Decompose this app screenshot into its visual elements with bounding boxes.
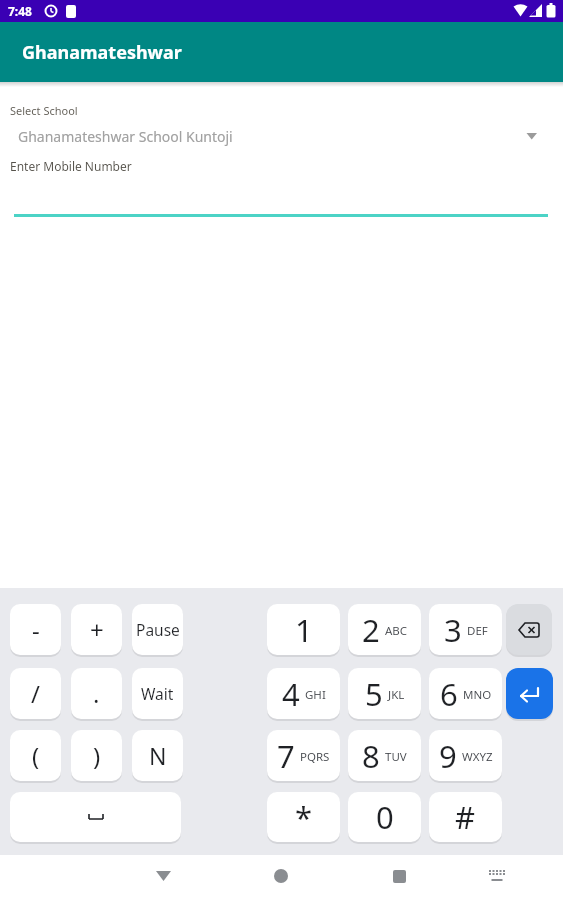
button[interactable]: 0 [348,792,421,842]
button[interactable]: 7 [267,730,340,781]
button[interactable]: 8 [348,730,421,781]
staticText: 3 [444,609,462,651]
button[interactable] [482,861,512,891]
staticText: JKL [388,687,405,703]
staticText: Ghanamateshwar [22,40,182,65]
staticText: Pause [136,619,180,640]
button[interactable]: 9 [429,730,502,781]
button[interactable]: 6 [429,668,502,719]
staticText: 7:48 [8,3,32,19]
staticText: GHI [305,687,326,703]
button[interactable]: 5 [348,668,421,719]
staticText: Ghanamateshwar School Kuntoji [18,127,233,146]
button[interactable]: Pause [132,604,183,655]
staticText: 2 [362,609,380,651]
button[interactable]: Ghanamateshwar School Kuntoji [0,120,563,150]
staticText: ( [32,739,40,772]
staticText: . [93,677,100,710]
button[interactable]: ) [71,730,122,781]
button[interactable]: + [71,604,122,655]
staticText: DEF [467,623,488,639]
button[interactable]: . [71,668,122,719]
button[interactable]: Wait [132,668,183,719]
button[interactable]: 2 [348,604,421,655]
button[interactable]: * [267,792,340,842]
button[interactable] [266,861,296,891]
staticText: 0 [376,796,394,838]
staticText: + [90,613,104,646]
staticText: 6 [440,673,458,715]
staticText: TUV [385,749,407,765]
staticText: / [31,677,40,710]
staticText: ) [93,739,101,772]
staticText: PQRS [300,749,330,765]
button[interactable] [506,604,552,655]
staticText: ABC [385,623,408,639]
staticText: MNO [463,687,492,703]
button[interactable] [384,861,414,891]
staticText: 5 [365,673,383,715]
staticText: 8 [362,735,380,777]
staticText: 7 [277,735,295,777]
button[interactable] [10,792,181,842]
staticText: Select School [10,103,78,118]
staticText: Wait [141,683,174,704]
staticText: 4 [282,673,300,715]
button[interactable]: 3 [429,604,502,655]
button[interactable] [506,668,553,719]
button[interactable] [148,861,178,891]
staticText: * [295,796,313,838]
button[interactable]: # [429,792,502,842]
button[interactable]: - [10,604,61,655]
staticText: 1 [295,609,313,651]
staticText: N [149,740,167,771]
staticText: 9 [439,735,457,777]
staticText: # [455,796,476,838]
button[interactable]: 1 [267,604,340,655]
button[interactable]: 4 [267,668,340,719]
staticText: Enter Mobile Number [10,158,132,174]
button[interactable]: ( [10,730,61,781]
staticText: WXYZ [462,749,493,765]
staticText: - [32,613,40,646]
button[interactable] [14,206,548,218]
button[interactable]: N [132,730,183,781]
button[interactable]: / [10,668,61,719]
